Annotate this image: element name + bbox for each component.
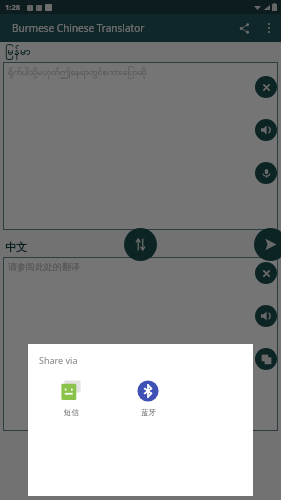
staticText: Share via: [39, 354, 78, 366]
button[interactable]: Clear: [255, 76, 277, 98]
button[interactable]: Translate: [254, 228, 281, 261]
button[interactable]: Share: [231, 15, 257, 41]
staticText: 请参阅此处的翻译: [8, 261, 80, 272]
button[interactable]: 蓝牙: [119, 376, 177, 419]
staticText: Burmese Chinese Translator: [12, 21, 145, 35]
staticText: 短信: [64, 408, 79, 417]
button[interactable]: Copy: [255, 348, 277, 370]
button[interactable]: Speak: [255, 119, 277, 141]
staticText: 1:28: [5, 2, 20, 12]
button[interactable]: 短信: [42, 376, 100, 419]
staticText: ရိုက်ပါသို့မဟုတ်ဤနေရာတွင်စကားပြောဆို: [8, 66, 147, 79]
button[interactable]: Swap languages: [124, 228, 157, 261]
staticText: 中文: [5, 240, 27, 254]
staticText: မြန်မာ: [5, 44, 31, 60]
button[interactable]: More options: [257, 16, 281, 40]
button[interactable]: Microphone: [255, 162, 277, 184]
button[interactable]: Clear translation: [255, 262, 277, 284]
staticText: 蓝牙: [141, 408, 156, 417]
button[interactable]: Speak translation: [255, 305, 277, 327]
